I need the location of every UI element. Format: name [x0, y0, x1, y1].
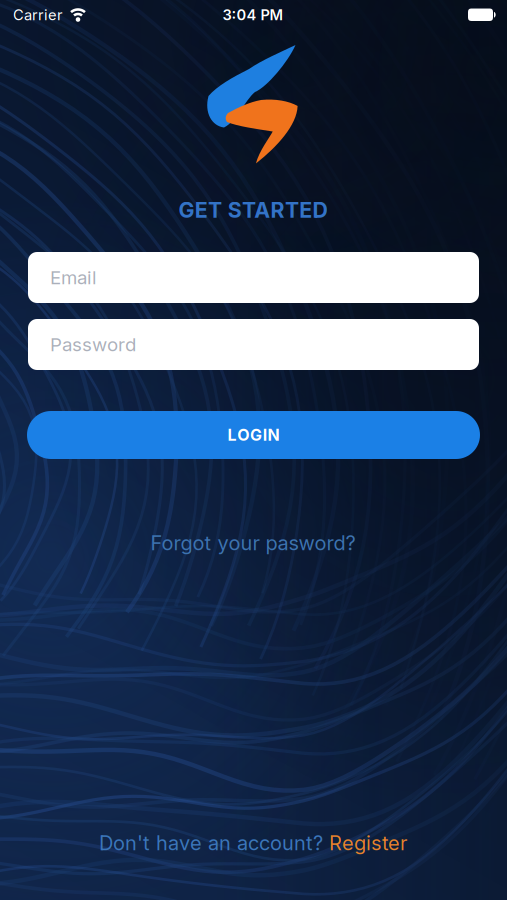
staticText: Don't have an account? — [99, 831, 323, 855]
staticText: Carrier — [13, 6, 63, 24]
button[interactable]: LOGIN — [27, 411, 480, 459]
button[interactable]: Email — [28, 252, 479, 303]
button[interactable]: Register — [329, 831, 407, 855]
button[interactable]: Password — [28, 319, 479, 370]
staticText: LOGIN — [227, 426, 280, 444]
staticText: 3:04 PM — [222, 6, 283, 24]
staticText: Forgot your pasword? — [150, 531, 355, 555]
staticText: Password — [50, 333, 136, 355]
staticText: Register — [329, 831, 407, 855]
button[interactable]: Forgot your pasword? — [150, 531, 355, 555]
staticText: Email — [50, 266, 97, 288]
staticText: GET STARTED — [178, 197, 327, 223]
